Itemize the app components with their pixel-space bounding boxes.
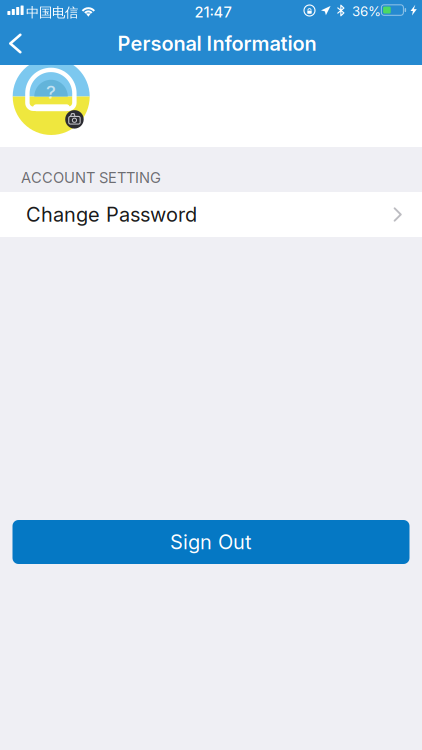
staticText: 中国电信 [26,4,78,21]
button[interactable]: Sign Out [12,520,409,564]
staticText: 36% [352,3,381,19]
staticText: ACCOUNT SETTING [21,169,161,186]
staticText: Sign Out [170,530,252,554]
button[interactable]: Back [0,22,45,65]
staticText: Change Password [26,203,197,226]
staticText: ? [46,81,56,103]
staticText: 21:47 [194,3,231,21]
staticText: Personal Information [117,32,316,55]
button[interactable]: Change Password [0,192,422,237]
